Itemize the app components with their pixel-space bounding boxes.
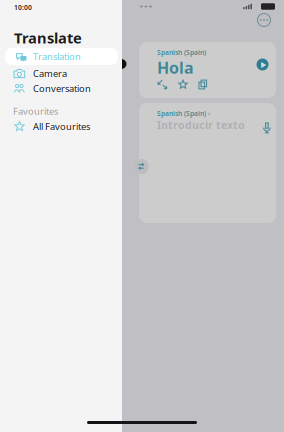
- button[interactable]: Conversation: [5, 80, 118, 97]
- staticText: Introducir texto: [157, 118, 245, 132]
- button[interactable]: Copy: [198, 79, 208, 90]
- staticText: Spanish (Spain): [157, 109, 206, 118]
- staticText: Hola: [157, 57, 194, 78]
- button[interactable]: Add to favourites: [178, 80, 188, 90]
- staticText: All Favourites: [33, 120, 90, 133]
- staticText: Favourites: [13, 105, 58, 117]
- staticText: 10:00: [14, 3, 32, 12]
- staticText: Translation: [33, 50, 81, 63]
- staticText: Translate: [14, 28, 82, 47]
- button[interactable]: More options: [255, 11, 273, 29]
- staticText: ›: [208, 109, 210, 118]
- staticText: Spanish (Spain): [157, 48, 206, 57]
- button[interactable]: Dictate: [263, 122, 271, 134]
- button[interactable]: Play translation: [255, 57, 270, 72]
- button[interactable]: Translation: [5, 48, 118, 65]
- staticText: Camera: [33, 67, 67, 80]
- button[interactable]: All Favourites: [5, 118, 118, 135]
- staticText: Conversation: [33, 82, 91, 95]
- button[interactable]: Swap languages: [134, 159, 149, 174]
- button[interactable]: Camera: [5, 65, 118, 82]
- button[interactable]: Full screen: [157, 79, 168, 90]
- button[interactable]: Resize sidebar: [122, 59, 127, 69]
